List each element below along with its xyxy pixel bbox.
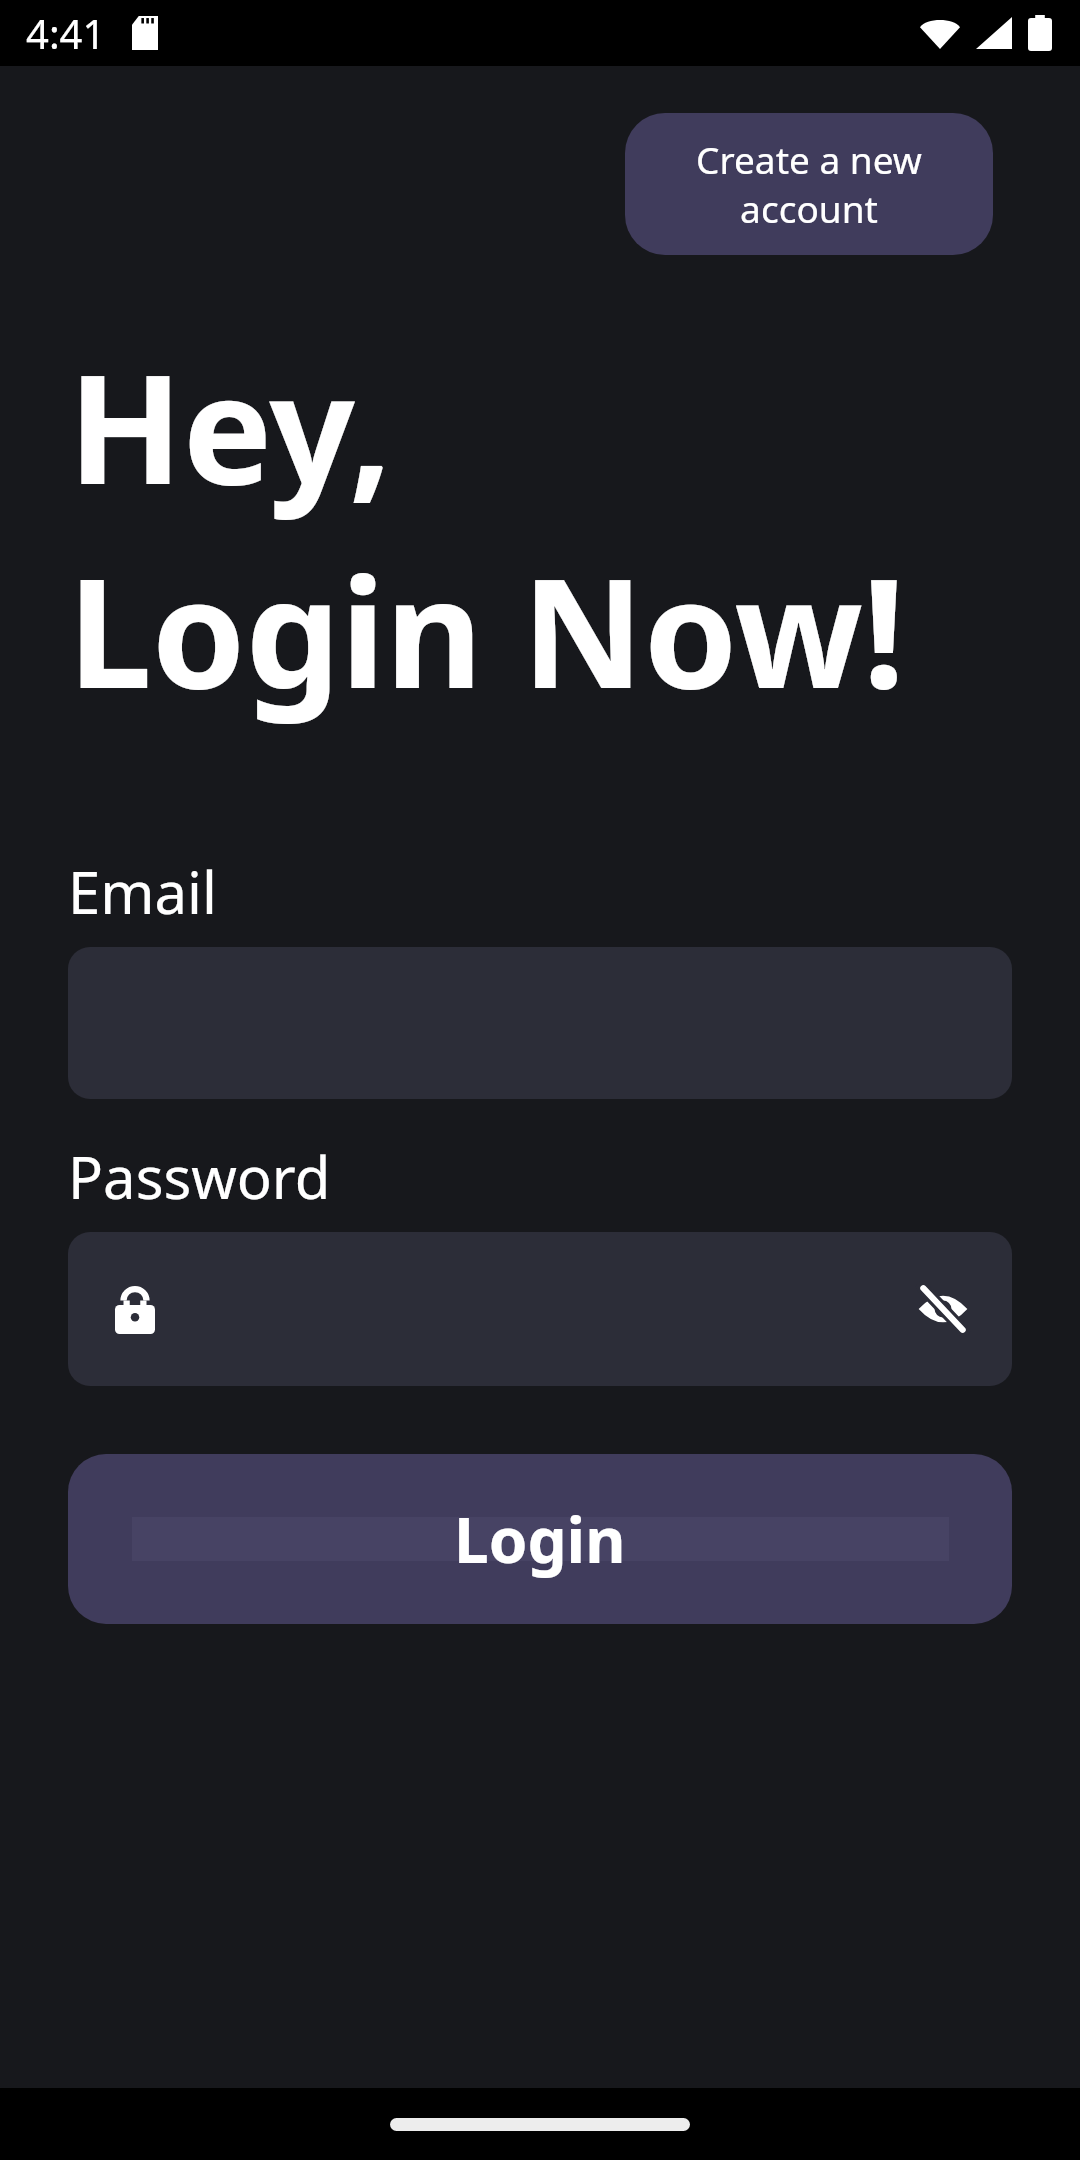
staticText: Login: [454, 1497, 626, 1581]
staticText: Create a new account: [643, 134, 975, 234]
button[interactable]: Show password: [912, 1278, 974, 1340]
button[interactable]: Create a new account: [625, 113, 993, 255]
staticText: Password: [68, 1137, 331, 1216]
button[interactable]: Login: [68, 1454, 1012, 1624]
staticText: Hey,: [68, 324, 392, 528]
staticText: 4:41: [26, 6, 106, 60]
staticText: Login Now!: [68, 528, 906, 732]
staticText: Email: [68, 852, 217, 931]
button[interactable]: Password input: [68, 1232, 1012, 1386]
